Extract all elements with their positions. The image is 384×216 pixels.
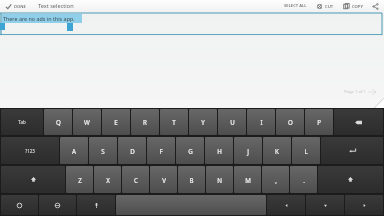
- staticText: X: [106, 176, 110, 184]
- staticText: CUT: [325, 4, 334, 10]
- button[interactable]: D: [118, 137, 146, 164]
- button[interactable]: Enter: [321, 137, 383, 164]
- button[interactable]: W: [73, 109, 101, 135]
- button[interactable]: DONE: [3, 3, 28, 10]
- button[interactable]: L: [292, 137, 320, 164]
- button[interactable]: [116, 195, 266, 215]
- button[interactable]: Y: [189, 109, 217, 135]
- staticText: .: [303, 176, 305, 184]
- staticText: A: [72, 147, 76, 155]
- button[interactable]: P: [305, 109, 333, 135]
- staticText: Tab: [18, 119, 26, 125]
- button[interactable]: Share: [370, 3, 381, 10]
- staticText: Page 1 of 1: [344, 89, 366, 95]
- button[interactable]: Down: [306, 195, 344, 215]
- staticText: M: [245, 176, 251, 184]
- button[interactable]: COPY: [341, 3, 365, 10]
- staticText: W: [84, 118, 90, 126]
- button[interactable]: Z: [66, 166, 93, 193]
- staticText: COPY: [352, 4, 363, 10]
- button[interactable]: Change language: [39, 195, 76, 215]
- button[interactable]: Right: [345, 195, 383, 215]
- button[interactable]: E: [102, 109, 130, 135]
- staticText: Q: [56, 118, 61, 126]
- staticText: C: [134, 176, 138, 184]
- button[interactable]: Emoji: [1, 195, 38, 215]
- staticText: L: [304, 147, 308, 155]
- staticText: E: [114, 118, 118, 126]
- button[interactable]: M: [234, 166, 261, 193]
- staticText: F: [159, 147, 163, 155]
- staticText: T: [172, 118, 176, 126]
- button[interactable]: Shift: [1, 166, 65, 193]
- button[interactable]: .: [290, 166, 317, 193]
- button[interactable]: X: [94, 166, 121, 193]
- button[interactable]: J: [234, 137, 262, 164]
- button[interactable]: I: [247, 109, 275, 135]
- staticText: N: [217, 176, 222, 184]
- button[interactable]: S: [89, 137, 117, 164]
- button[interactable]: Shift: [318, 166, 383, 193]
- button[interactable]: C: [122, 166, 149, 193]
- staticText: P: [317, 118, 321, 126]
- button[interactable]: V: [150, 166, 177, 193]
- button[interactable]: U: [218, 109, 246, 135]
- staticText: K: [275, 147, 279, 155]
- staticText: O: [288, 118, 293, 126]
- staticText: S: [101, 147, 105, 155]
- button[interactable]: Q: [44, 109, 72, 135]
- button[interactable]: G: [176, 137, 204, 164]
- button[interactable]: Text selection: [38, 2, 74, 10]
- staticText: B: [189, 176, 194, 184]
- staticText: H: [217, 147, 222, 155]
- staticText: D: [130, 147, 135, 155]
- button[interactable]: Left: [267, 195, 305, 215]
- staticText: R: [143, 118, 147, 126]
- button[interactable]: R: [131, 109, 159, 135]
- staticText: ,: [275, 176, 277, 184]
- button[interactable]: ?123: [1, 137, 59, 164]
- button[interactable]: T: [160, 109, 188, 135]
- button[interactable]: F: [147, 137, 175, 164]
- button[interactable]: O: [276, 109, 304, 135]
- staticText: V: [162, 176, 166, 184]
- button[interactable]: K: [263, 137, 291, 164]
- button[interactable]: CUT: [314, 3, 336, 10]
- button[interactable]: A: [60, 137, 88, 164]
- staticText: There are no ads in this app.: [3, 15, 75, 22]
- staticText: Y: [201, 118, 205, 126]
- button[interactable]: Backspace: [334, 109, 383, 135]
- staticText: J: [247, 147, 249, 155]
- staticText: G: [188, 147, 193, 155]
- staticText: DONE: [14, 4, 26, 10]
- button[interactable]: N: [206, 166, 233, 193]
- staticText: Z: [78, 176, 82, 184]
- button[interactable]: ,: [262, 166, 289, 193]
- staticText: I: [260, 118, 263, 126]
- button[interactable]: B: [178, 166, 205, 193]
- button[interactable]: SELECT ALL: [282, 3, 309, 9]
- button[interactable]: H: [205, 137, 233, 164]
- staticText: U: [230, 118, 235, 126]
- staticText: Text selection: [38, 2, 74, 10]
- button[interactable]: Voice input: [77, 195, 115, 215]
- button[interactable]: Tab: [1, 109, 43, 135]
- staticText: ?123: [25, 148, 35, 154]
- staticText: SELECT ALL: [284, 3, 307, 9]
